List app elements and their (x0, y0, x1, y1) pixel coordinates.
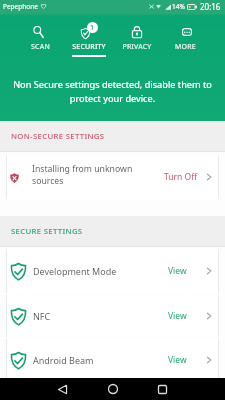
staticText: Installing from unknown sources (32, 163, 133, 187)
staticText: 20:16 (200, 1, 221, 12)
button[interactable]: 1 (65, 13, 113, 58)
button[interactable]: NFC (6, 295, 219, 337)
staticText: View (168, 265, 187, 277)
staticText: SECURITY (72, 42, 106, 52)
staticText: NFC (33, 310, 51, 322)
staticText: Development Mode (33, 265, 117, 277)
staticText: SECURE SETTINGS (11, 226, 83, 237)
button[interactable]: SCAN (16, 13, 65, 58)
staticText: 14% (172, 2, 185, 11)
staticText: SCAN (31, 42, 50, 52)
staticText: View (168, 354, 187, 366)
staticText: PRIVACY (122, 42, 152, 52)
button[interactable]: Back (50, 378, 75, 400)
button[interactable]: MORE (161, 13, 209, 58)
staticText: NON-SECURE SETTINGS (11, 131, 105, 142)
staticText: Pepephone (3, 2, 38, 11)
staticText: View (168, 310, 187, 322)
button[interactable]: Android Beam (6, 339, 219, 381)
button[interactable]: PRIVACY (113, 13, 161, 58)
button[interactable]: Installing from unknown sources (6, 155, 219, 199)
button[interactable]: Development Mode (6, 249, 219, 293)
button[interactable]: Recent apps (150, 378, 175, 400)
staticText: Android Beam (33, 354, 94, 366)
button[interactable]: Home (100, 378, 125, 400)
staticText: 1 (90, 23, 95, 33)
staticText: MORE (175, 42, 196, 52)
staticText: Non Secure settings detected, disable th… (11, 78, 214, 104)
staticText: Turn Off (164, 171, 198, 183)
